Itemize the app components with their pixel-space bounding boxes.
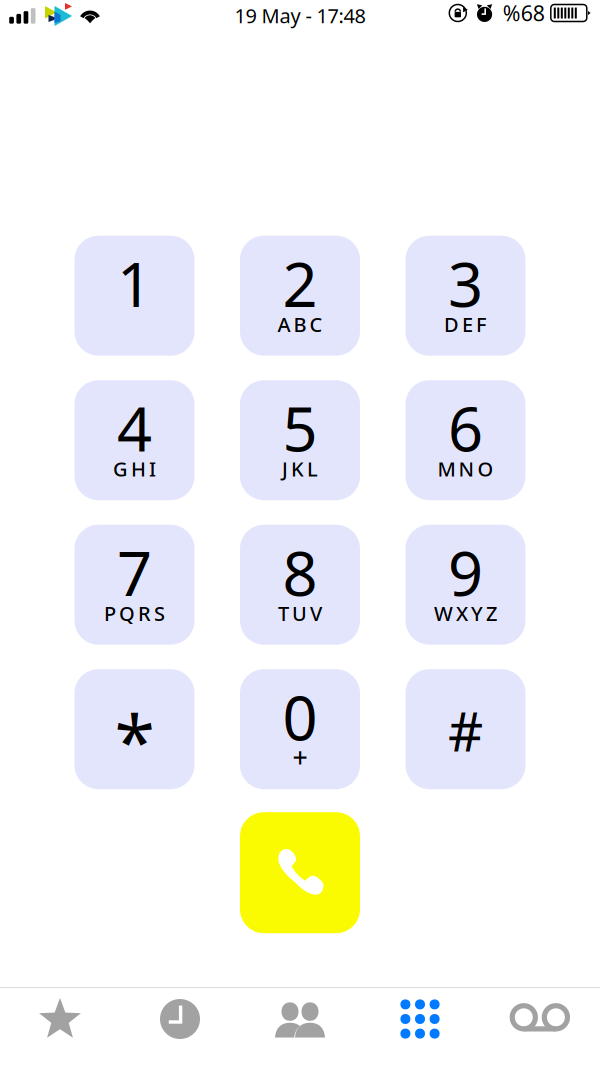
staticText: 6 bbox=[448, 387, 483, 468]
staticText: DEF bbox=[444, 311, 487, 337]
button[interactable]: 2 bbox=[240, 236, 360, 356]
button[interactable]: Recents bbox=[120, 988, 240, 1050]
staticText: PQRS bbox=[104, 600, 165, 626]
staticText: * bbox=[114, 691, 154, 789]
button[interactable]: 4 bbox=[74, 380, 194, 500]
staticText: WXYZ bbox=[434, 600, 497, 626]
staticText: 19 May - 17:48 bbox=[234, 2, 365, 29]
staticText: JKL bbox=[282, 455, 318, 482]
staticText: 5 bbox=[282, 387, 317, 468]
button[interactable]: 9 bbox=[405, 525, 525, 645]
button[interactable]: Keypad bbox=[360, 988, 480, 1050]
staticText: TUV bbox=[278, 600, 322, 626]
button[interactable]: Call bbox=[240, 812, 360, 933]
button[interactable]: # bbox=[405, 669, 525, 789]
staticText: 9 bbox=[448, 531, 483, 613]
button[interactable]: 8 bbox=[240, 525, 360, 645]
button[interactable]: 1 bbox=[74, 236, 194, 356]
staticText: + bbox=[292, 739, 307, 775]
staticText: MNO bbox=[437, 455, 493, 482]
button[interactable]: 3 bbox=[405, 236, 525, 356]
staticText: 4 bbox=[117, 387, 152, 468]
staticText: %68 bbox=[503, 0, 545, 27]
staticText: GHI bbox=[113, 455, 156, 482]
staticText: 1 bbox=[117, 242, 152, 324]
staticText: 7 bbox=[117, 531, 152, 613]
button[interactable]: Voicemail bbox=[480, 988, 600, 1050]
staticText: 8 bbox=[282, 531, 317, 613]
button[interactable]: 6 bbox=[405, 380, 525, 500]
staticText: 3 bbox=[448, 242, 483, 324]
button[interactable]: Contacts bbox=[240, 988, 360, 1050]
button[interactable]: * bbox=[74, 669, 194, 789]
button[interactable]: 0 bbox=[240, 669, 360, 789]
staticText: 0 bbox=[282, 676, 317, 757]
button[interactable]: 7 bbox=[74, 525, 194, 645]
button[interactable]: Favorites bbox=[0, 988, 120, 1050]
staticText: ABC bbox=[277, 311, 322, 337]
staticText: # bbox=[448, 694, 483, 766]
staticText: 2 bbox=[282, 242, 317, 324]
button[interactable]: 5 bbox=[240, 380, 360, 500]
